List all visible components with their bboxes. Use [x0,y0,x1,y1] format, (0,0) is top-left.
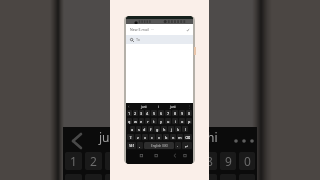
button[interactable]: r [145,118,150,124]
staticText: 5 [153,111,156,116]
button[interactable]: c [149,134,155,140]
button[interactable]: 7 [165,110,171,116]
button[interactable]: 9 [179,110,185,116]
staticText: just [170,104,176,109]
staticText: v [158,135,160,140]
button[interactable]: s [136,126,141,132]
staticText: ju [99,129,110,145]
staticText: 8 [206,153,213,169]
staticText: p [188,119,191,124]
button[interactable]: . [175,142,181,149]
button[interactable]: o [179,118,185,124]
button[interactable]: a [130,126,135,132]
button[interactable]: x [142,134,148,140]
button[interactable]: i [172,118,178,124]
staticText: j [171,127,172,132]
staticText: 8 [174,111,177,116]
button[interactable]: k [175,126,181,132]
staticText: w [134,119,137,124]
button[interactable]: 3 [139,110,144,116]
staticText: 7 [167,111,170,116]
button[interactable]: n [170,134,176,140]
staticText: b [165,135,168,140]
button[interactable]: f [148,126,153,132]
staticText: n [172,135,175,140]
button[interactable]: ↵ [182,142,192,149]
button[interactable]: English (UK) [144,142,174,149]
staticText: English (UK) [151,144,168,148]
staticText: 3 [140,111,143,116]
staticText: h [163,127,166,132]
button[interactable]: e [139,118,144,124]
button[interactable]: , [137,142,143,149]
button[interactable]: !#1 [127,142,136,149]
staticText: c [151,135,153,140]
button[interactable]: w [133,118,138,124]
staticText: r [147,119,149,124]
button[interactable]: Recents [142,150,159,164]
button[interactable]: h [161,126,167,132]
button[interactable]: l [182,126,188,132]
staticText: y [160,119,162,124]
staticText: u [167,119,170,124]
staticText: To [136,37,141,42]
button[interactable]: j [168,126,174,132]
button[interactable]: m [177,134,183,140]
button[interactable]: 5 [151,110,157,116]
staticText: ··· [151,27,154,32]
staticText: m [178,135,182,140]
staticText: t [153,119,155,124]
button[interactable]: 2 [133,110,138,116]
button[interactable]: ⌫ [184,134,192,140]
button[interactable]: 8 [172,110,178,116]
button[interactable]: d [142,126,147,132]
button[interactable]: t [151,118,157,124]
button[interactable]: Hide [176,150,193,164]
button[interactable]: q [127,118,132,124]
staticText: f [150,127,152,132]
staticText: 9 [181,111,184,116]
button[interactable]: g [154,126,160,132]
staticText: 1 [70,153,77,169]
button[interactable]: ⇧ [127,134,134,140]
button[interactable]: New E-mail [126,24,193,35]
staticText: 2 [134,111,137,116]
staticText: 6 [160,111,163,116]
staticText: 4 [130,153,137,169]
button[interactable]: v [156,134,162,140]
button[interactable]: p [186,118,192,124]
button[interactable]: Search [126,35,193,44]
button[interactable]: z [135,134,141,140]
staticText: q [128,119,131,124]
staticText: 1 [128,111,131,116]
button[interactable]: 4 [145,110,150,116]
staticText: ⋮ [187,104,191,109]
button[interactable]: u [165,118,171,124]
staticText: 6 [168,153,175,169]
staticText: d [143,127,146,132]
button[interactable]: Keyboard [126,150,142,164]
staticText: New E-mail [130,27,149,32]
button[interactable]: Back [159,150,176,164]
staticText: i [207,175,211,180]
button[interactable]: 0 [186,110,192,116]
button[interactable]: b [163,134,169,140]
staticText: 5 [149,153,156,169]
staticText: ⌫ [185,135,191,139]
button[interactable]: y [158,118,164,124]
staticText: 9 [225,153,232,169]
button[interactable]: 6 [158,110,164,116]
staticText: 0 [188,111,191,116]
staticText: z [137,135,139,140]
staticText: l [185,127,186,132]
staticText: 7 [187,153,194,169]
button[interactable]: 1 [127,110,132,116]
staticText: i [158,104,159,109]
